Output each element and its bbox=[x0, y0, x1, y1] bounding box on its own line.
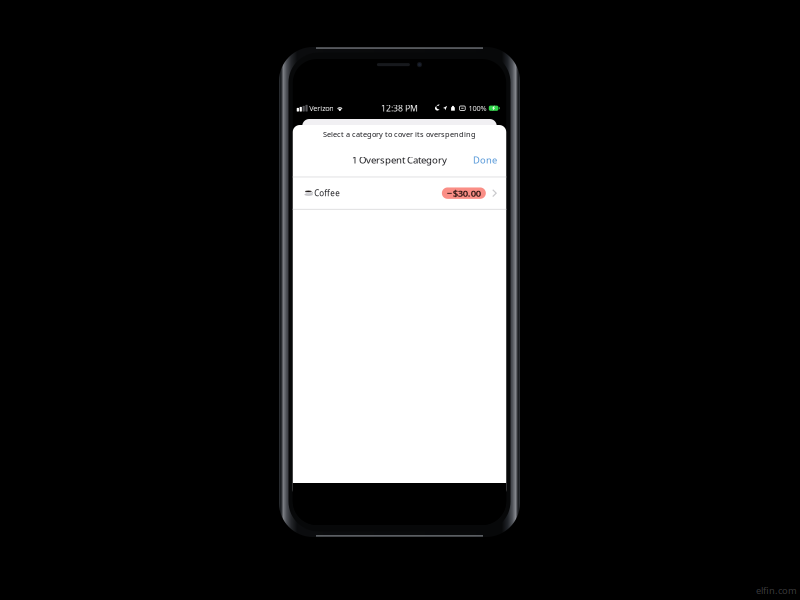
staticText: Coffee bbox=[314, 188, 340, 199]
staticText: elfin.com bbox=[756, 584, 797, 597]
staticText: 12:38 PM bbox=[381, 102, 418, 114]
staticText: Done bbox=[473, 153, 497, 166]
button[interactable]: Coffee bbox=[293, 177, 506, 210]
staticText: −$30.00 bbox=[447, 187, 481, 200]
button[interactable]: Done bbox=[459, 143, 506, 176]
staticText: Select a category to cover its overspend… bbox=[323, 129, 476, 139]
staticText: 100% bbox=[469, 103, 487, 113]
staticText: 1 Overspent Category bbox=[352, 153, 447, 166]
staticText: Verizon bbox=[309, 103, 334, 113]
